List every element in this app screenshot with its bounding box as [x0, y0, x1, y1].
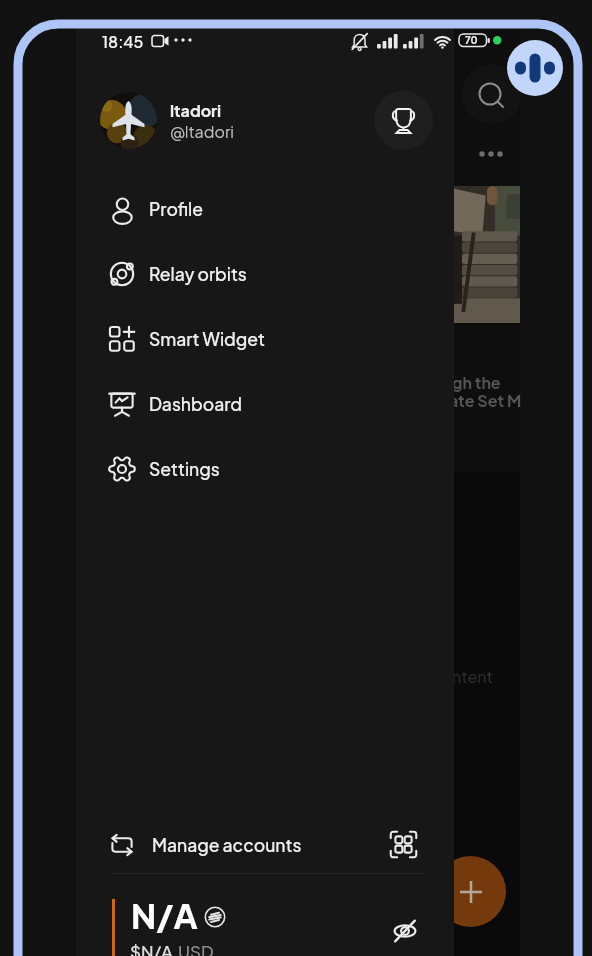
button[interactable]: Settings	[76, 436, 454, 501]
staticText: 70	[465, 34, 478, 47]
staticText: Smart Widget	[149, 328, 266, 350]
button[interactable]: Dashboard	[76, 371, 454, 436]
button[interactable]: Profile	[76, 176, 454, 241]
staticText: $N/A	[130, 940, 173, 956]
staticText: ate Set M	[449, 390, 522, 410]
staticText: ntent	[452, 666, 493, 686]
button[interactable]: Manage accounts	[76, 817, 454, 873]
button[interactable]: Hide balance	[388, 914, 422, 948]
staticText: N/A	[131, 894, 198, 937]
button[interactable]: Relay orbits	[76, 241, 454, 306]
staticText: gh the	[452, 372, 501, 392]
staticText: Manage accounts	[152, 834, 302, 856]
button[interactable]: Open assistant	[507, 40, 563, 96]
button[interactable]: Achievements	[374, 91, 433, 150]
staticText: USD	[178, 940, 214, 956]
button[interactable]: Scan QR code	[386, 827, 420, 861]
staticText: Settings	[149, 458, 220, 480]
button[interactable]: N/A	[76, 890, 454, 952]
staticText: Relay orbits	[149, 263, 247, 285]
staticText: @ltadori	[170, 121, 234, 141]
staticText: 18:45	[102, 31, 144, 51]
button[interactable]: Add	[435, 856, 506, 927]
staticText: Profile	[149, 198, 203, 220]
button[interactable]: Smart Widget	[76, 306, 454, 371]
staticText: Dashboard	[149, 393, 243, 415]
staticText: ltadori	[170, 100, 222, 120]
